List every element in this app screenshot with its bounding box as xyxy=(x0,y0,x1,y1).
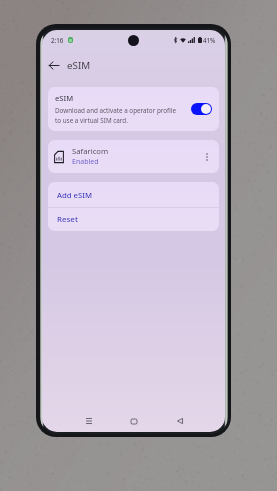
staticText: 41% xyxy=(203,36,216,44)
button[interactable]: eSIM xyxy=(48,87,219,131)
button[interactable]: Back xyxy=(166,411,194,431)
button[interactable]: Safaricom xyxy=(48,140,219,173)
button[interactable]: Reset xyxy=(48,208,219,231)
button[interactable]: Back xyxy=(47,56,61,74)
button[interactable]: More options xyxy=(202,148,212,166)
staticText: eSIM xyxy=(55,93,74,103)
staticText: Safaricom xyxy=(72,146,109,156)
button[interactable]: Recent apps xyxy=(75,411,103,431)
staticText: 2:16 xyxy=(51,36,64,44)
staticText: Reset xyxy=(57,214,78,225)
button[interactable]: Home xyxy=(120,411,148,431)
button[interactable]: Enable eSIM xyxy=(191,103,212,115)
staticText: Add eSIM xyxy=(57,190,92,200)
staticText: Enabled xyxy=(72,157,99,167)
button[interactable]: Add eSIM xyxy=(48,182,219,207)
staticText: Download and activate a operator profile… xyxy=(55,106,181,125)
staticText: eSIM xyxy=(67,59,91,72)
